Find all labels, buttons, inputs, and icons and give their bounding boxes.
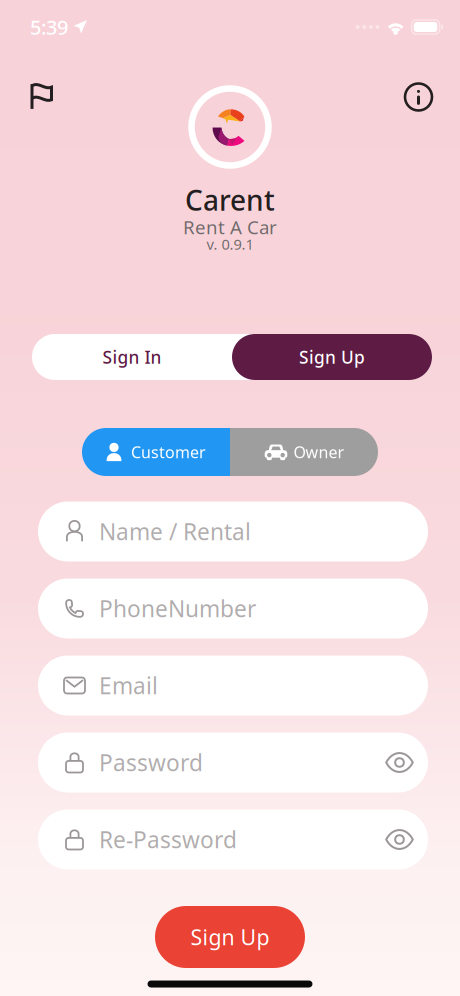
staticText: Sign In <box>102 345 161 368</box>
button[interactable]: Sign Up <box>232 334 432 380</box>
staticText: Sign Up <box>190 923 269 951</box>
staticText: Customer <box>131 441 206 463</box>
button[interactable]: Name / Rental <box>38 501 428 561</box>
button[interactable]: Owner <box>230 428 378 476</box>
button[interactable]: Re-Password <box>38 809 428 869</box>
staticText: Sign Up <box>299 345 365 368</box>
button[interactable]: Info <box>399 77 438 116</box>
staticText: v. 0.9.1 <box>206 234 253 254</box>
button[interactable]: Password <box>38 732 428 792</box>
staticText: 5:39 <box>30 14 68 40</box>
staticText: Re-Password <box>99 824 237 854</box>
button[interactable]: PhoneNumber <box>38 578 428 638</box>
button[interactable]: Customer <box>82 428 230 476</box>
button[interactable]: Sign In <box>32 334 232 380</box>
staticText: Password <box>99 747 203 777</box>
button[interactable]: Email <box>38 655 428 715</box>
button[interactable]: Sign Up <box>155 906 305 968</box>
staticText: Owner <box>293 441 344 463</box>
staticText: Rent A Car <box>183 215 277 239</box>
staticText: PhoneNumber <box>99 593 256 623</box>
staticText: Carent <box>185 181 275 219</box>
button[interactable]: Language <box>24 76 59 116</box>
staticText: Email <box>99 670 158 700</box>
staticText: Name / Rental <box>99 516 251 546</box>
